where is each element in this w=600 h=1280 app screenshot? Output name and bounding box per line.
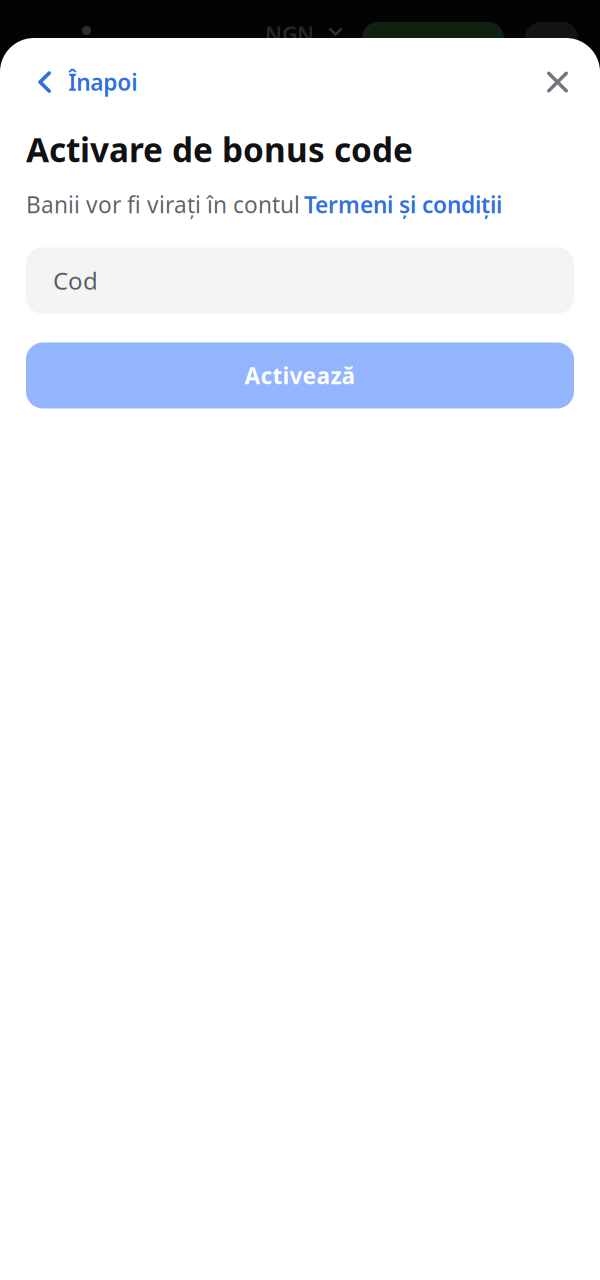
button[interactable]: Cod [26, 247, 574, 313]
staticText: Activează [244, 360, 355, 390]
button[interactable]: Înapoi [26, 56, 147, 108]
staticText: NGN [265, 20, 314, 48]
staticText: Înapoi [68, 67, 137, 97]
button[interactable]: Activează [26, 342, 574, 408]
staticText: Banii vor fi virați în contul [26, 189, 300, 219]
button[interactable]: Close [536, 61, 579, 104]
staticText: Termeni și condiții [304, 189, 502, 219]
button[interactable]: Termeni și condiții [304, 189, 502, 219]
staticText: Cod [53, 264, 98, 296]
staticText: Activare de bonus code [26, 127, 413, 171]
